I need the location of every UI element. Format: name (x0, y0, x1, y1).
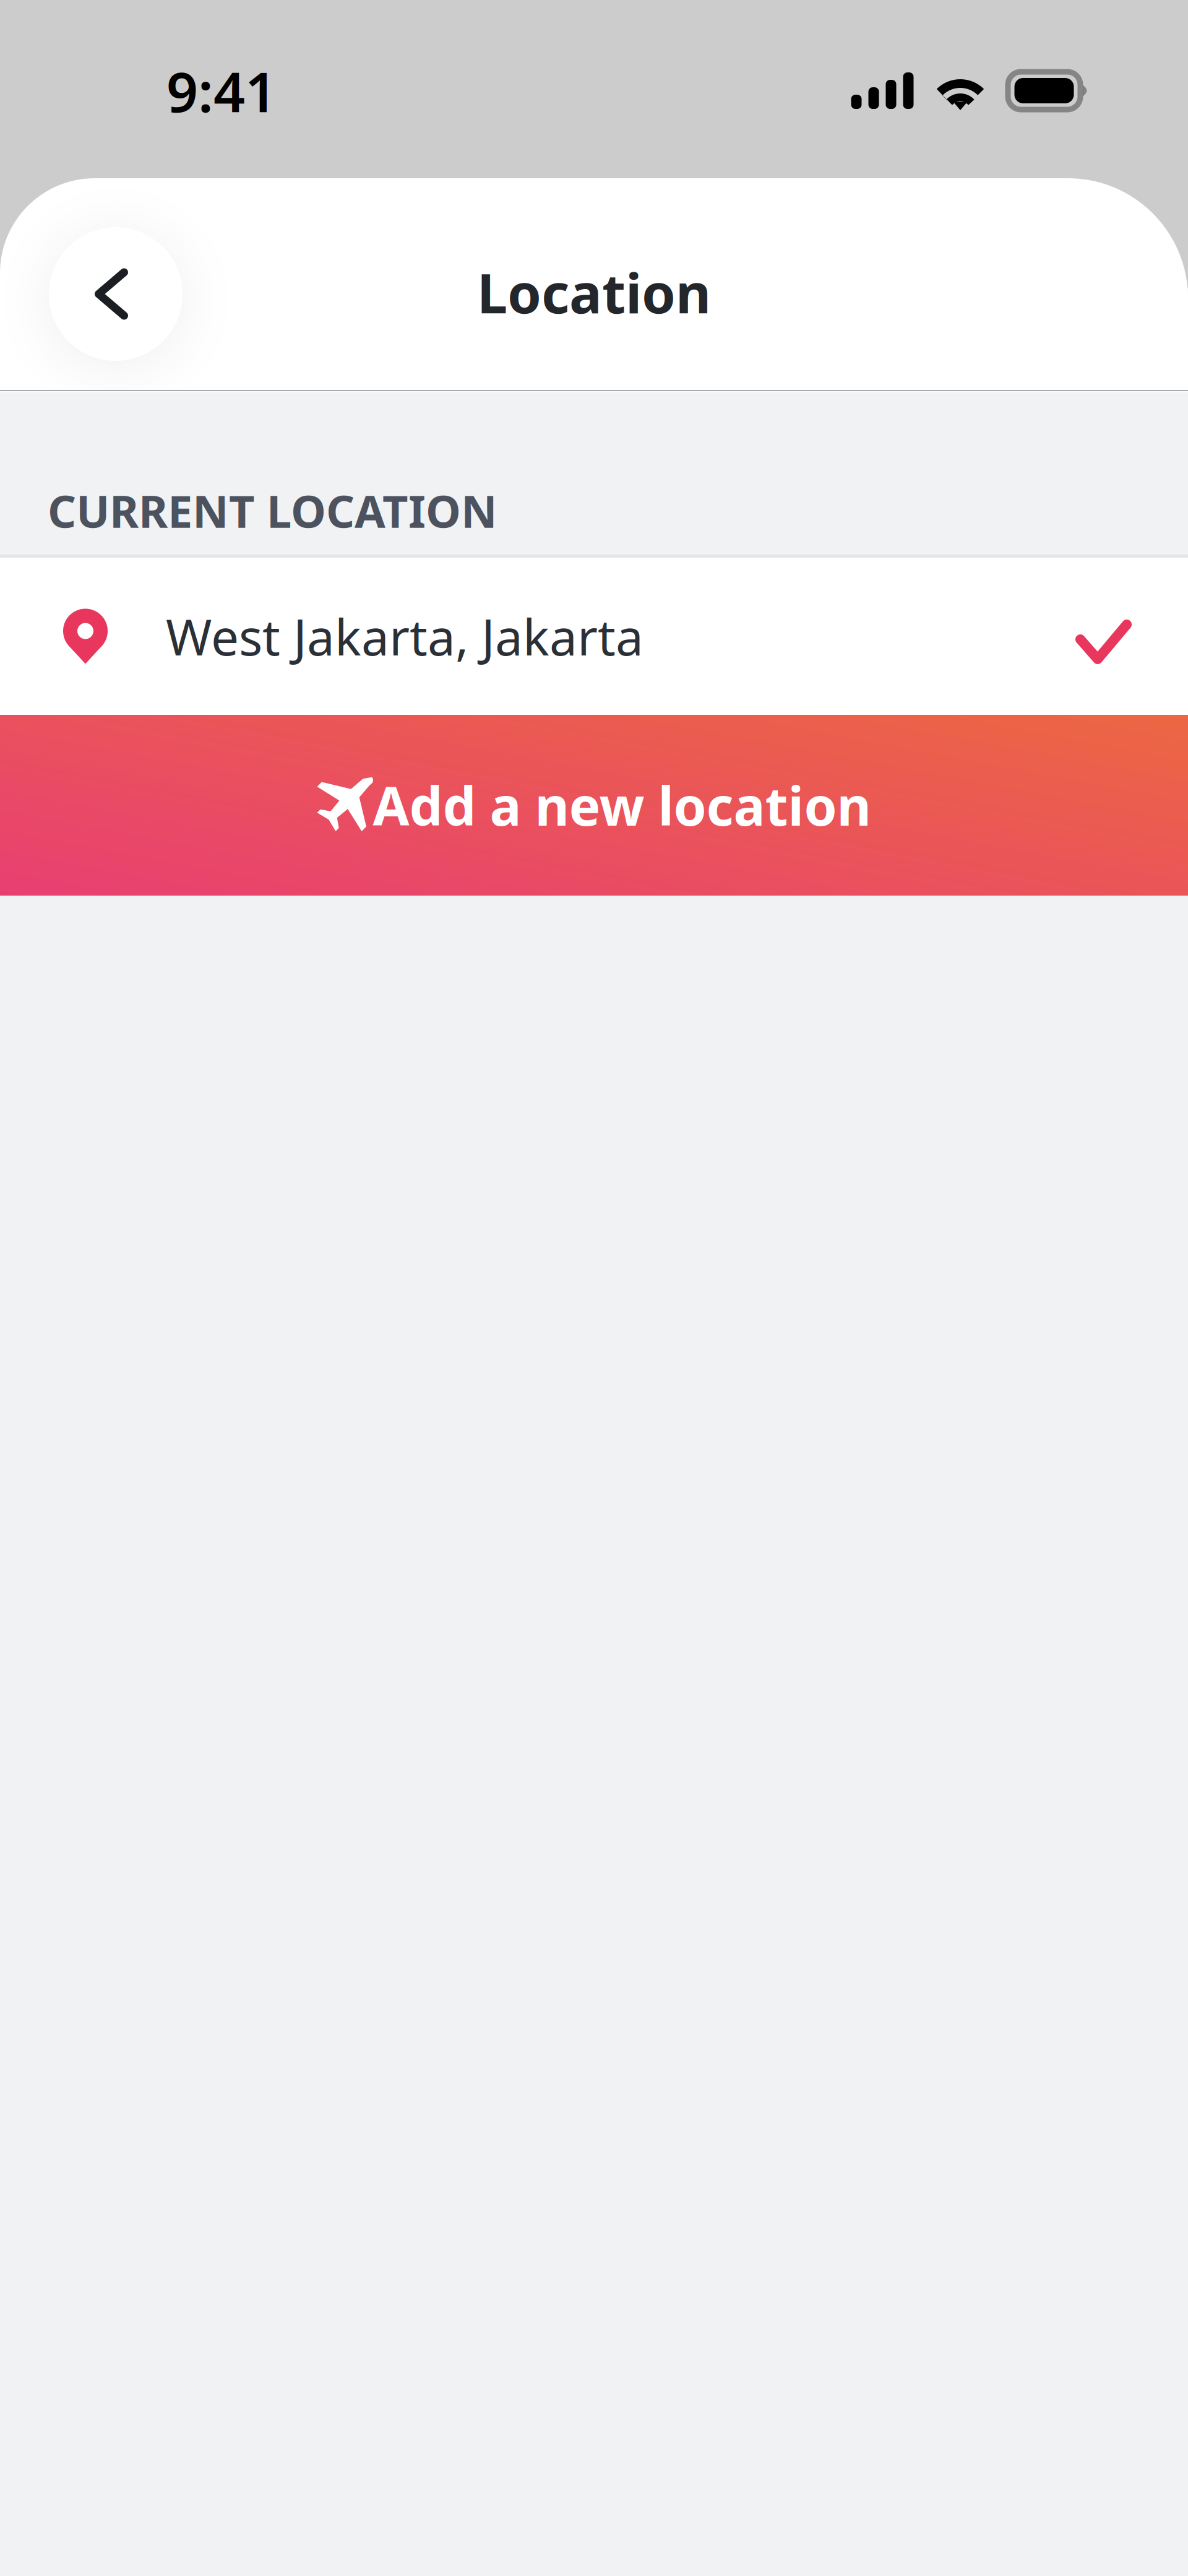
staticText: CURRENT LOCATION (48, 481, 497, 540)
button[interactable]: Back (49, 227, 183, 361)
staticText: Location (477, 256, 711, 328)
staticText: 9:41 (166, 54, 277, 127)
staticText: Add a new location (373, 770, 871, 840)
staticText: West Jakarta, Jakarta (166, 603, 643, 669)
button[interactable]: West Jakarta, Jakarta (0, 558, 1188, 715)
button[interactable]: Add a new location (0, 715, 1188, 896)
